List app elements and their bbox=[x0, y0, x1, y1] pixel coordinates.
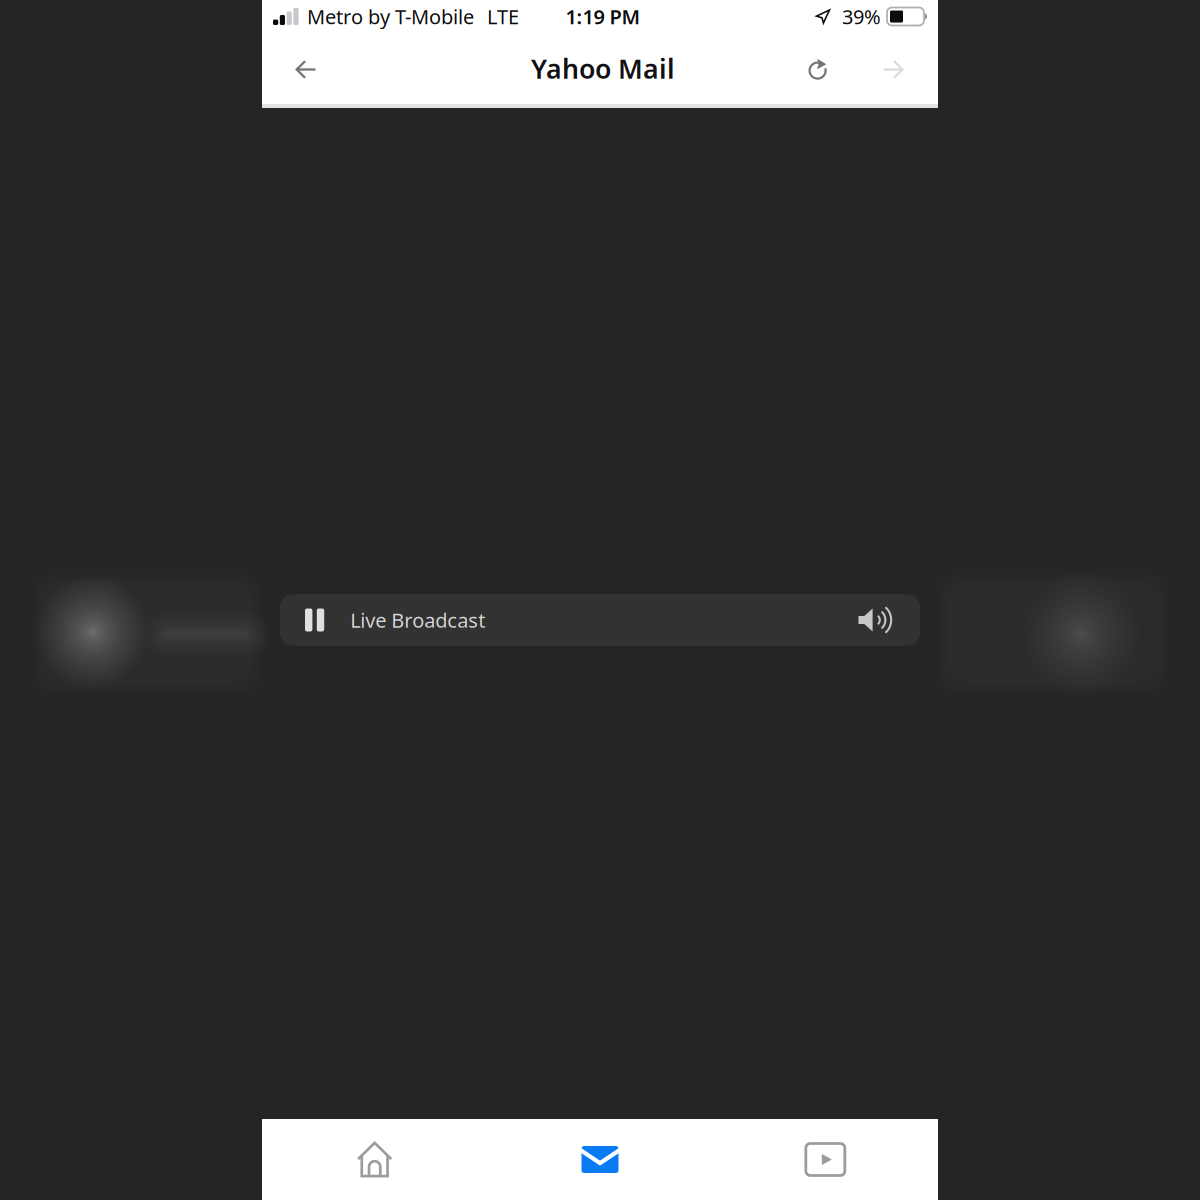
staticText: Live Broadcast bbox=[350, 607, 485, 633]
button[interactable]: Video bbox=[713, 1119, 938, 1199]
button[interactable]: Mail bbox=[487, 1119, 713, 1199]
staticText: 39% bbox=[842, 3, 881, 30]
button[interactable]: Reload bbox=[790, 41, 846, 97]
button[interactable]: Forward bbox=[865, 41, 921, 97]
staticText: Metro by T-Mobile bbox=[307, 3, 474, 30]
staticText: Yahoo Mail bbox=[531, 51, 675, 86]
button[interactable]: Home bbox=[262, 1119, 487, 1199]
staticText: 1:19 PM bbox=[565, 3, 640, 30]
button[interactable]: Back bbox=[278, 41, 334, 97]
button[interactable]: Live Broadcast bbox=[280, 594, 920, 646]
staticText: LTE bbox=[487, 3, 519, 30]
